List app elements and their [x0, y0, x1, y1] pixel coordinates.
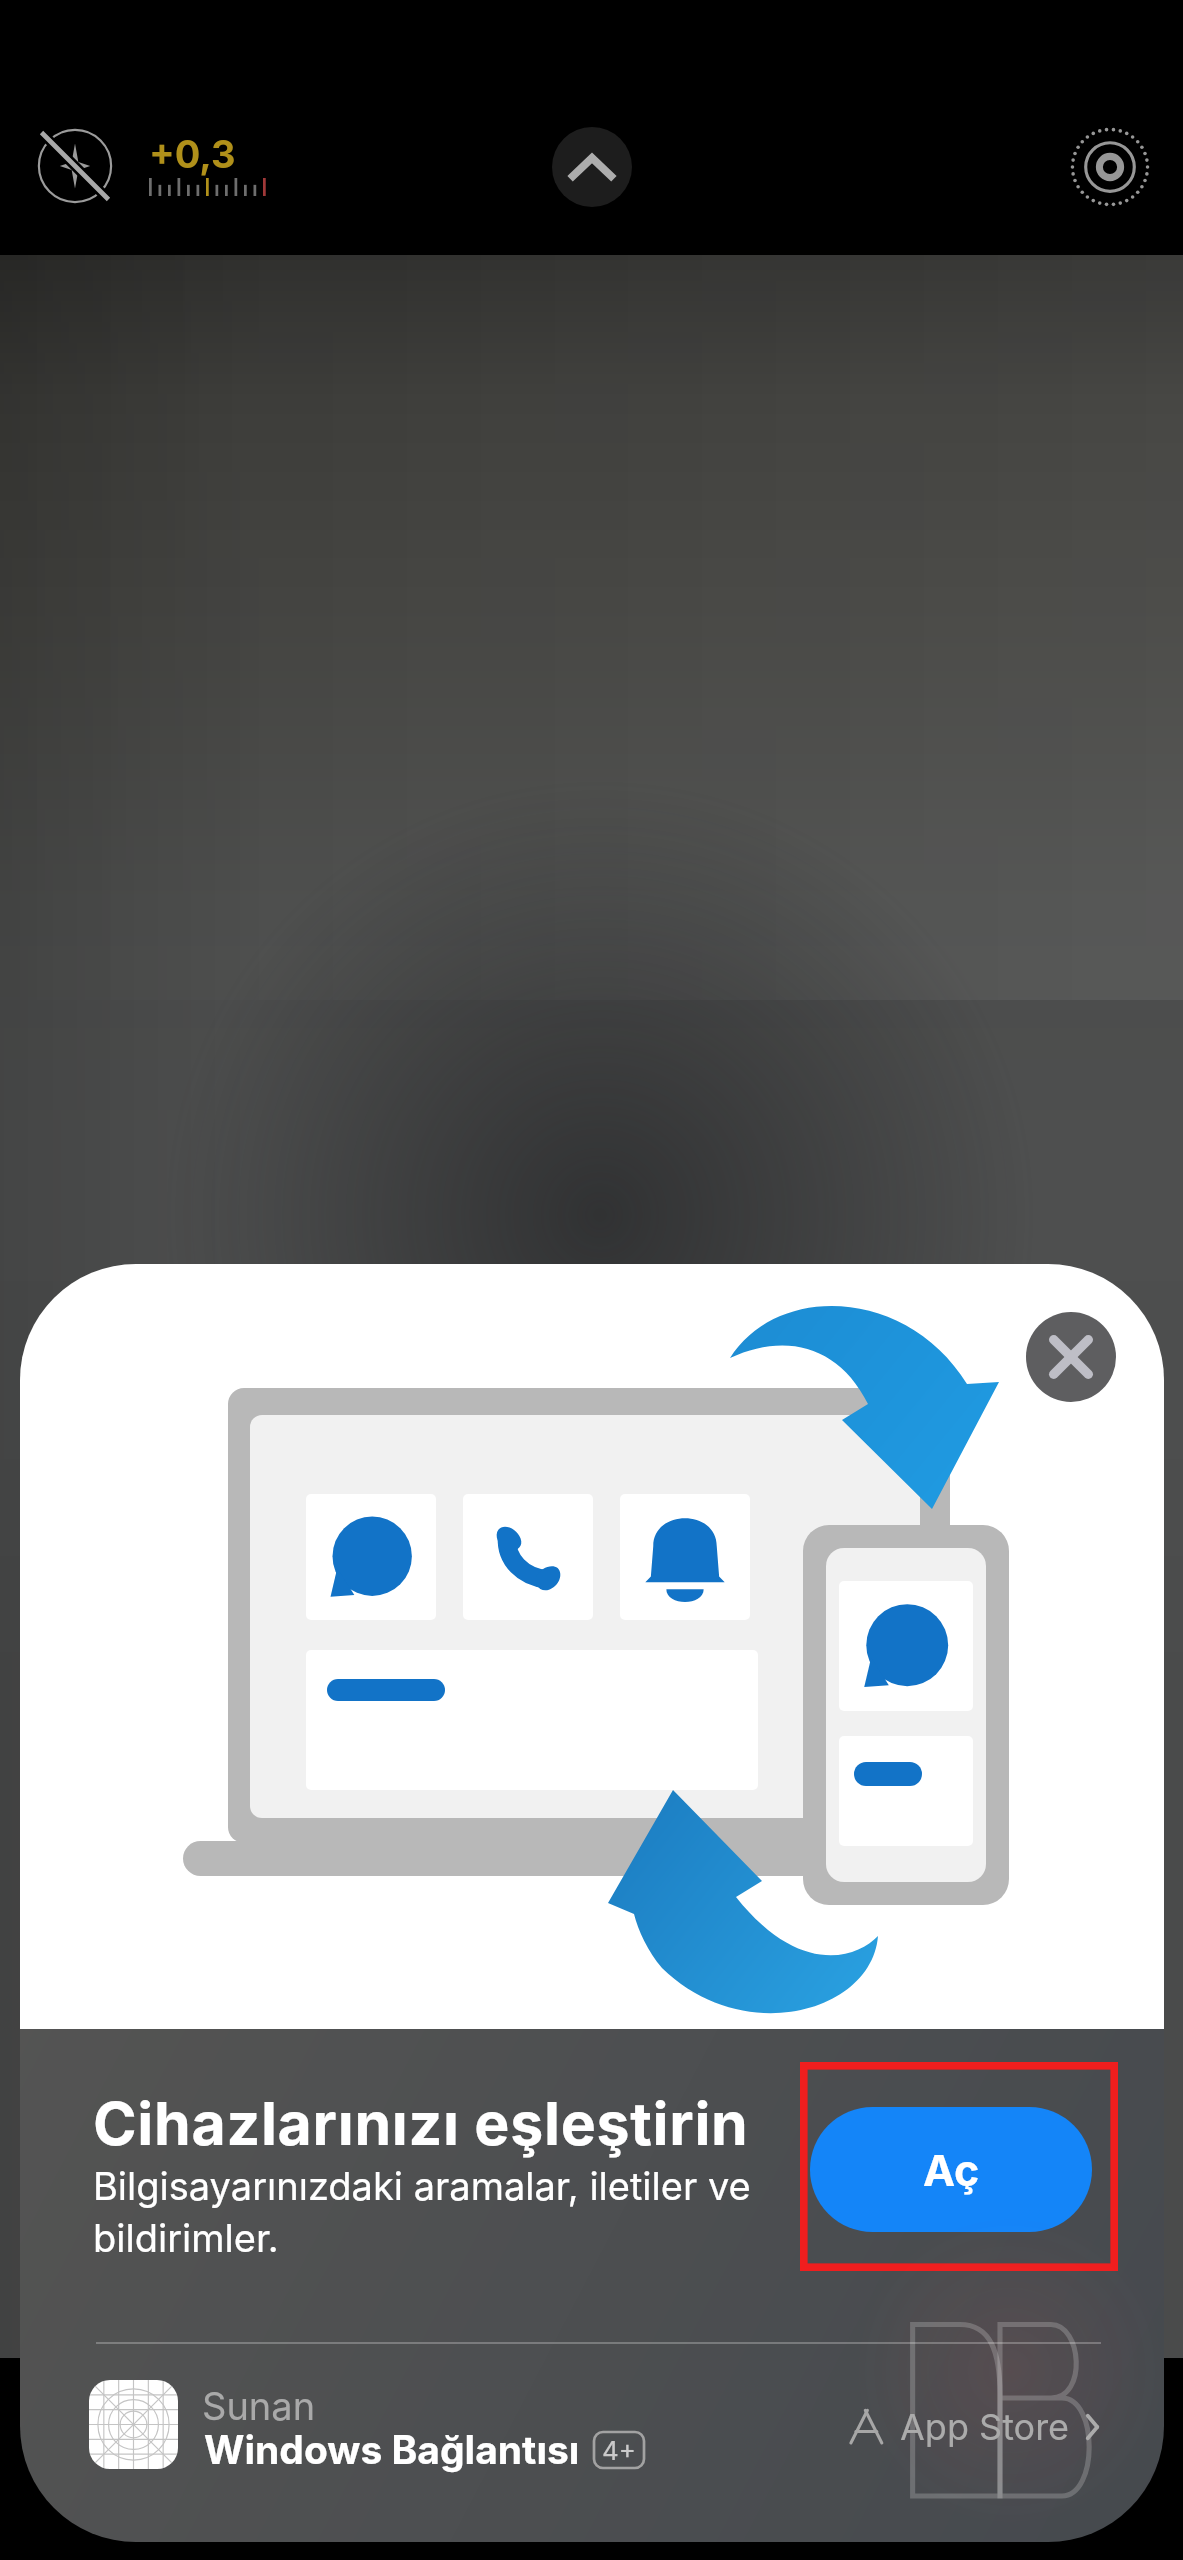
button[interactable]: Expand camera options — [552, 127, 632, 207]
staticText: Windows Bağlantısı — [204, 2426, 580, 2473]
button[interactable]: App Store — [848, 2405, 1101, 2449]
staticText: 4+ — [602, 2435, 636, 2466]
staticText: Bilgisayarınızdaki aramalar, iletiler ve… — [93, 2163, 783, 2262]
staticText: Aç — [923, 2144, 980, 2196]
button[interactable]: Aç — [810, 2107, 1092, 2232]
button[interactable]: Close — [1026, 1312, 1116, 1402]
button[interactable]: Camera settings — [1065, 122, 1155, 212]
button[interactable]: Flash off — [33, 124, 117, 208]
staticText: Sunan — [202, 2383, 316, 2429]
staticText: Cihazlarınızı eşleştirin — [93, 2088, 749, 2159]
staticText: +0,3 — [149, 131, 236, 177]
staticText: App Store — [900, 2405, 1070, 2449]
